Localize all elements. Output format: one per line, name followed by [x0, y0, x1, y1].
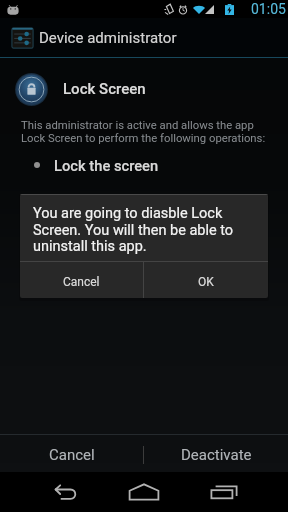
button[interactable]: Cancel: [0, 435, 143, 474]
staticText: You are going to diasble Lock Screen. Yo…: [33, 205, 258, 254]
staticText: Lock the screen: [54, 157, 159, 174]
button[interactable]: Back: [42, 472, 86, 512]
staticText: Device administrator: [39, 29, 177, 47]
button[interactable]: OK: [144, 264, 268, 298]
staticText: Cancel: [49, 446, 95, 464]
staticText: This administrator is active and allows …: [21, 119, 266, 145]
staticText: OK: [198, 275, 214, 289]
button[interactable]: Home: [122, 472, 166, 512]
staticText: Cancel: [63, 275, 100, 289]
staticText: Deactivate: [181, 446, 252, 464]
button[interactable]: Deactivate: [144, 435, 288, 474]
button[interactable]: Cancel: [20, 264, 143, 298]
staticText: 01:05: [251, 1, 286, 17]
button[interactable]: Recent apps: [202, 472, 246, 512]
staticText: Lock Screen: [63, 80, 146, 98]
